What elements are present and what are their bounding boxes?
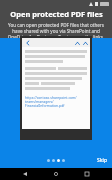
button[interactable]: https://contoso.sharepoint.com/teams/man… <box>25 95 87 108</box>
button[interactable]: Action <box>74 40 80 46</box>
button[interactable]: Recent apps <box>81 168 93 180</box>
staticText: https://contoso.sharepoint.com/teams/man… <box>25 95 87 108</box>
button[interactable]: Home <box>50 168 62 180</box>
staticText: Open protected PDF files <box>10 9 103 19</box>
button[interactable]: Back <box>19 168 31 180</box>
staticText: You can open protected PDF files that ot… <box>7 22 105 38</box>
staticText: Skip <box>97 157 107 164</box>
button[interactable]: Back <box>25 40 31 46</box>
button[interactable]: Action <box>82 40 88 46</box>
button[interactable]: Skip <box>94 155 110 166</box>
